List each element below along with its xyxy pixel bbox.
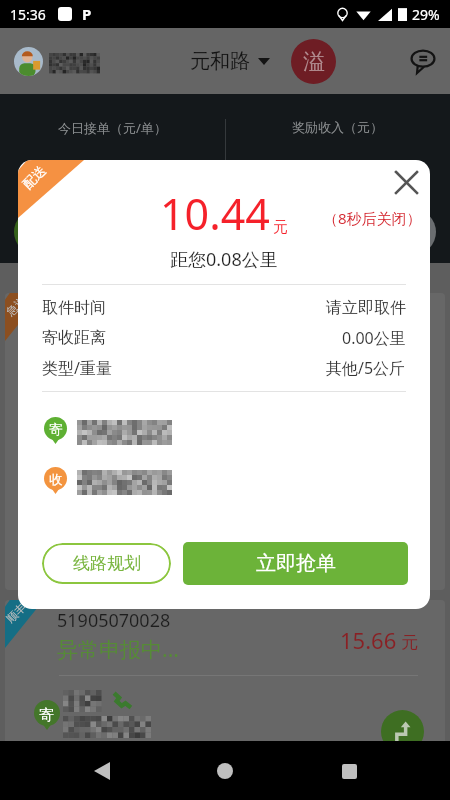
button[interactable]: Messages xyxy=(403,41,443,81)
button[interactable]: 溢 xyxy=(291,39,336,84)
staticText: 寄 xyxy=(39,705,55,724)
button[interactable]: Recents xyxy=(327,749,371,793)
staticText: 距您0.08公里 xyxy=(170,247,278,272)
button[interactable]: 急送 xyxy=(5,293,445,590)
staticText: 线路规划 xyxy=(73,553,141,574)
staticText: 51905070028 xyxy=(57,608,171,633)
staticText: 其他/5公斤 xyxy=(326,357,406,379)
button[interactable]: 元和路 xyxy=(184,41,276,82)
button[interactable]: 立即抢单 xyxy=(183,542,408,585)
staticText: 寄 xyxy=(49,421,63,438)
button[interactable]: Back xyxy=(80,749,124,793)
staticText: 寄收距离 xyxy=(42,328,106,348)
staticText: 15.66 xyxy=(340,625,397,655)
button[interactable]: Grab orders xyxy=(14,209,60,255)
staticText: 急送 xyxy=(5,293,29,319)
staticText: 今日接单（元/单） xyxy=(58,119,167,137)
staticText: 取件时间 xyxy=(42,298,106,318)
staticText: 请立即取件 xyxy=(326,298,406,318)
button[interactable]: Route planning xyxy=(381,710,424,753)
staticText: 立即抢单 xyxy=(256,551,336,576)
staticText: 奖励收入（元） xyxy=(292,119,383,135)
staticText: 29% xyxy=(412,5,440,24)
staticText: 元 xyxy=(401,325,418,346)
button[interactable]: Close xyxy=(386,162,426,202)
staticText: 收 xyxy=(49,471,63,488)
staticText: 溢 xyxy=(303,48,325,76)
button[interactable]: Filter xyxy=(390,209,436,255)
staticText: 异常申报中... xyxy=(57,635,179,664)
staticText: P xyxy=(82,4,92,24)
button[interactable]: 线路规划 xyxy=(42,543,171,584)
staticText: 配送 xyxy=(19,162,49,192)
button[interactable]: Home xyxy=(203,749,247,793)
staticText: 0.00公里 xyxy=(342,327,406,349)
staticText: 15:36 xyxy=(10,5,46,24)
staticText: 异常申报中... xyxy=(57,328,179,357)
staticText: 10.44 xyxy=(160,184,270,243)
staticText: （8秒后关闭） xyxy=(323,208,422,228)
button[interactable]: 顺丰 xyxy=(5,600,445,800)
staticText: 15.66 xyxy=(340,318,397,348)
staticText: 元和路 xyxy=(190,49,250,74)
staticText: 51905070028 xyxy=(57,301,171,326)
staticText: 元 xyxy=(273,218,288,237)
staticText: 元 xyxy=(401,632,418,653)
staticText: 顺丰 xyxy=(5,600,29,626)
button[interactable]: Profile xyxy=(14,47,43,76)
staticText: 类型/重量 xyxy=(42,357,112,379)
